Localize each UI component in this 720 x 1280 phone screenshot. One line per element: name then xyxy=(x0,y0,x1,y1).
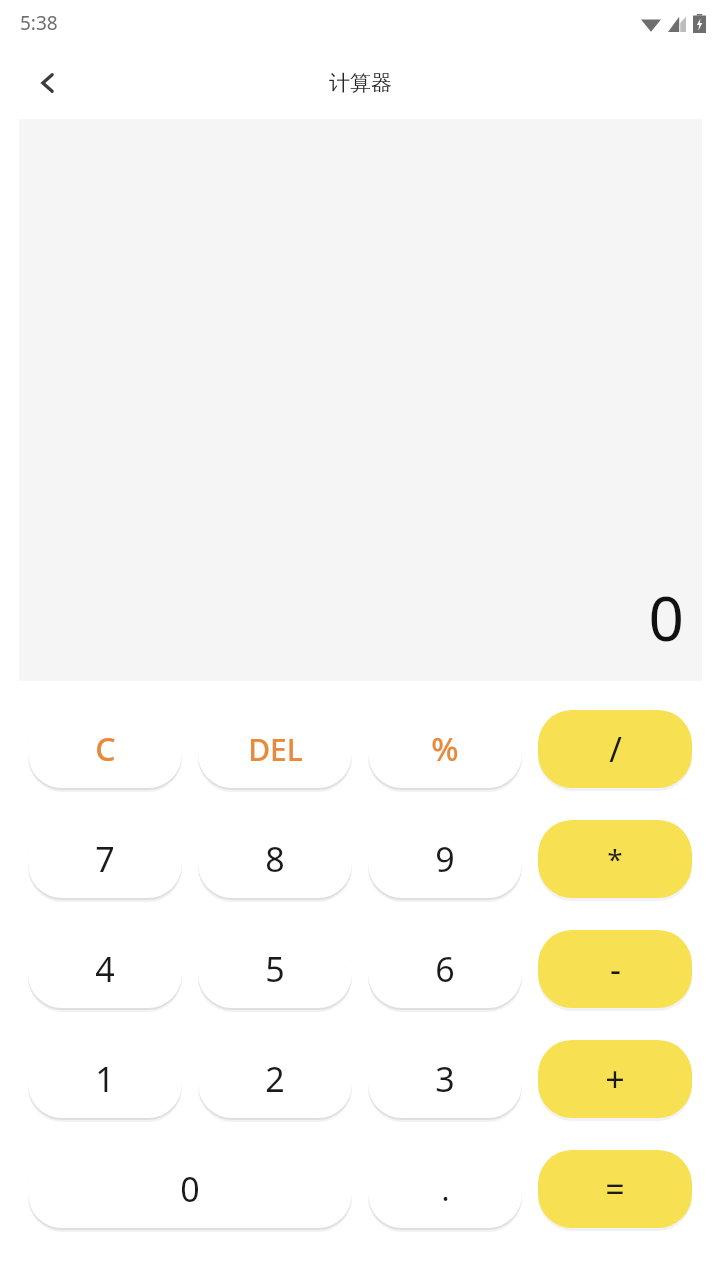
staticText: + xyxy=(605,1056,625,1102)
staticText: C xyxy=(95,727,116,771)
button[interactable]: 1 xyxy=(28,1040,182,1118)
button[interactable]: 6 xyxy=(368,930,522,1008)
staticText: 0 xyxy=(648,575,684,659)
staticText: 6 xyxy=(435,946,455,992)
button[interactable]: 0 xyxy=(28,1150,352,1228)
button[interactable]: + xyxy=(538,1040,692,1118)
button[interactable]: 5 xyxy=(198,930,352,1008)
button[interactable]: % xyxy=(368,710,522,788)
staticText: % xyxy=(431,727,459,771)
button[interactable]: 8 xyxy=(198,820,352,898)
staticText: 7 xyxy=(95,836,115,882)
staticText: 2 xyxy=(265,1056,285,1102)
button[interactable]: 4 xyxy=(28,930,182,1008)
staticText: 3 xyxy=(435,1056,455,1102)
staticText: / xyxy=(609,726,622,772)
staticText: DEL xyxy=(248,729,303,770)
button[interactable]: DEL xyxy=(198,710,352,788)
staticText: 1 xyxy=(95,1056,115,1102)
staticText: . xyxy=(441,1169,450,1210)
staticText: 9 xyxy=(435,836,455,882)
staticText: - xyxy=(610,946,621,992)
button[interactable]: Back xyxy=(16,51,80,115)
button[interactable]: C xyxy=(28,710,182,788)
button[interactable]: 2 xyxy=(198,1040,352,1118)
staticText: 5 xyxy=(265,946,285,992)
staticText: 8 xyxy=(265,836,285,882)
staticText: 计算器 xyxy=(329,70,392,96)
button[interactable]: - xyxy=(538,930,692,1008)
staticText: = xyxy=(605,1166,625,1212)
button[interactable]: / xyxy=(538,710,692,788)
button[interactable]: = xyxy=(538,1150,692,1228)
button[interactable]: 3 xyxy=(368,1040,522,1118)
staticText: * xyxy=(607,840,623,878)
staticText: 4 xyxy=(95,946,115,992)
button[interactable]: 7 xyxy=(28,820,182,898)
staticText: 0 xyxy=(180,1166,200,1212)
staticText: 5:38 xyxy=(20,10,58,36)
button[interactable]: * xyxy=(538,820,692,898)
button[interactable]: . xyxy=(368,1150,522,1228)
button[interactable]: 9 xyxy=(368,820,522,898)
